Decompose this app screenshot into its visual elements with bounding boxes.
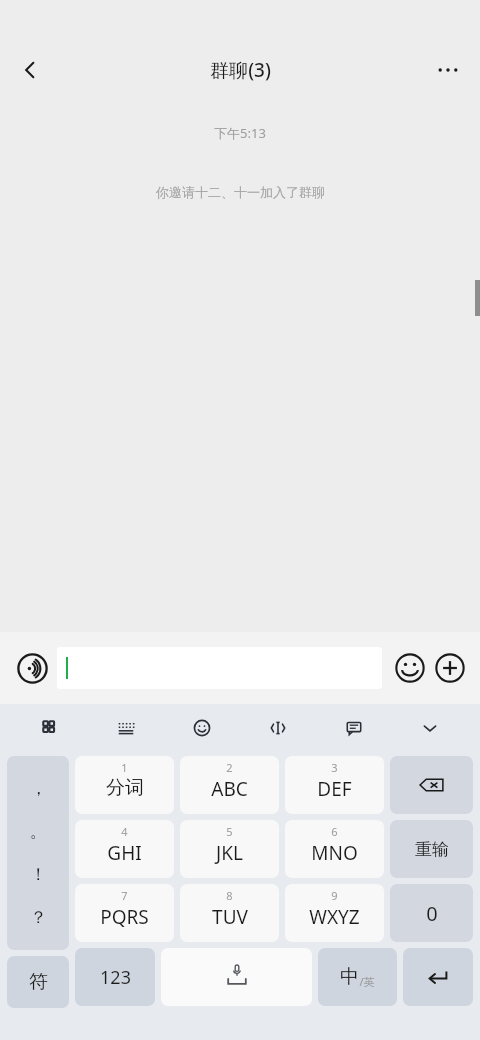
button[interactable]: 8 — [180, 884, 279, 942]
staticText: 7 — [121, 888, 128, 903]
staticText: 123 — [100, 965, 131, 990]
staticText: 1 — [121, 760, 128, 775]
button[interactable]: Space — [161, 948, 312, 1006]
button[interactable]: 0 — [390, 884, 473, 942]
button[interactable]: Emoticons — [164, 706, 240, 750]
button[interactable]: More options — [424, 46, 472, 94]
button[interactable]: Quick phrases — [316, 706, 392, 750]
staticText: PQRS — [100, 904, 149, 930]
staticText: TUV — [212, 904, 248, 930]
button[interactable]: Panels — [12, 706, 88, 750]
staticText: 群聊(3) — [210, 57, 271, 83]
button[interactable]: Back — [6, 46, 54, 94]
staticText: 符 — [29, 970, 48, 994]
staticText: 。 — [30, 821, 47, 842]
button[interactable]: 4 — [75, 820, 174, 878]
staticText: MNO — [311, 840, 358, 866]
button[interactable]: 2 — [180, 756, 279, 814]
button[interactable]: 7 — [75, 884, 174, 942]
staticText: 5 — [226, 824, 233, 839]
staticText: 0 — [426, 900, 438, 927]
staticText: GHI — [107, 840, 142, 866]
staticText: 8 — [226, 888, 233, 903]
button[interactable]: Punctuation — [7, 756, 69, 950]
button[interactable]: 6 — [285, 820, 384, 878]
button[interactable]: 5 — [180, 820, 279, 878]
button[interactable]: 9 — [285, 884, 384, 942]
staticText: ， — [30, 778, 47, 799]
button[interactable]: Move cursor — [240, 706, 316, 750]
staticText: /英 — [359, 974, 375, 989]
button[interactable]: Emoji — [390, 648, 430, 688]
button[interactable]: 中 — [318, 948, 397, 1006]
staticText: DEF — [317, 776, 352, 802]
staticText: WXYZ — [309, 904, 360, 930]
button[interactable]: 3 — [285, 756, 384, 814]
button[interactable]: 重输 — [390, 820, 473, 878]
staticText: 分词 — [106, 776, 144, 800]
staticText: 4 — [121, 824, 128, 839]
button[interactable]: Backspace — [390, 756, 473, 814]
button[interactable]: 123 — [75, 948, 155, 1006]
staticText: ABC — [211, 776, 248, 802]
button[interactable] — [57, 647, 382, 689]
button[interactable]: More functions — [430, 648, 470, 688]
staticText: JKL — [216, 840, 243, 866]
staticText: 下午5:13 — [214, 124, 266, 142]
button[interactable]: Enter — [403, 948, 473, 1006]
button[interactable]: Hide keyboard — [392, 706, 468, 750]
staticText: 6 — [331, 824, 338, 839]
staticText: 你邀请十二、十一加入了群聊 — [156, 184, 325, 200]
staticText: 3 — [331, 760, 338, 775]
button[interactable]: Voice message — [10, 646, 54, 690]
staticText: 9 — [331, 888, 338, 903]
button[interactable]: Symbols — [7, 956, 69, 1008]
staticText: ！ — [30, 864, 47, 885]
staticText: ？ — [30, 907, 47, 928]
staticText: 重输 — [415, 839, 449, 860]
button[interactable]: 1 — [75, 756, 174, 814]
staticText: 中 — [340, 965, 359, 989]
staticText: 2 — [226, 760, 233, 775]
button[interactable]: Keyboard layout — [88, 706, 164, 750]
